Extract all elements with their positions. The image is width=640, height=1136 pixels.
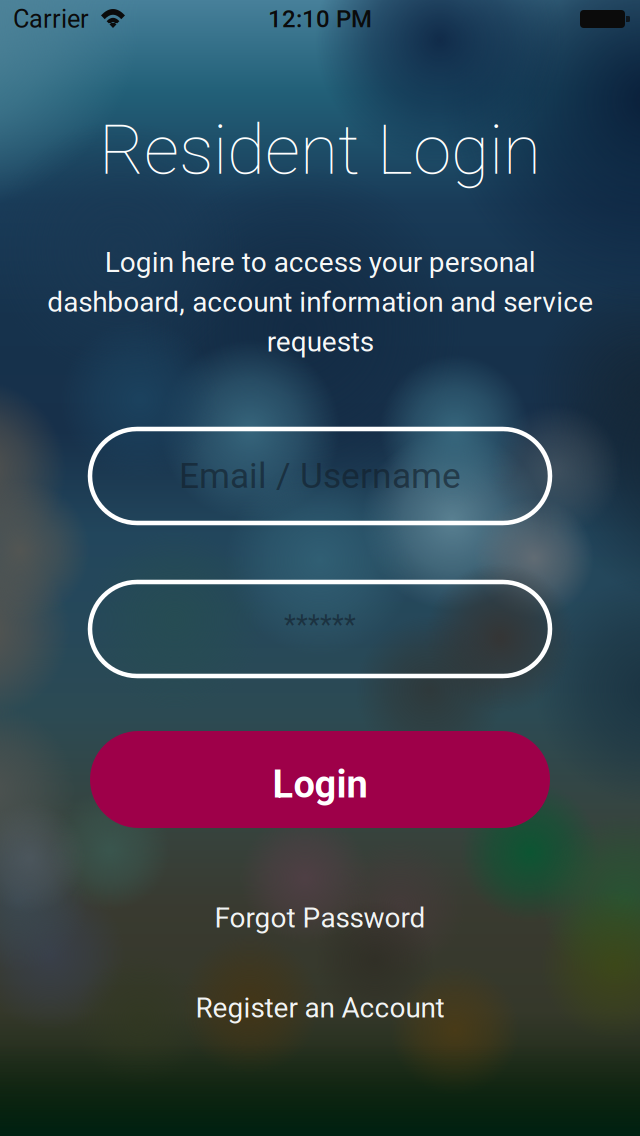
staticText: 12:10 PM [268, 5, 372, 33]
button[interactable]: Login [90, 731, 550, 828]
button[interactable]: Register an Account [80, 983, 560, 1033]
staticText: Login [272, 762, 367, 807]
button[interactable]: ****** [90, 582, 550, 676]
button[interactable]: Forgot Password [110, 893, 530, 943]
staticText: Forgot Password [214, 902, 425, 934]
staticText: ****** [284, 609, 356, 641]
staticText: Email / Username [179, 455, 461, 497]
staticText: Register an Account [195, 992, 444, 1024]
staticText: Carrier [13, 4, 89, 34]
staticText: Login here to access your personal dashb… [47, 246, 593, 358]
staticText: Resident Login [99, 109, 541, 191]
button[interactable]: Email / Username [90, 429, 550, 523]
